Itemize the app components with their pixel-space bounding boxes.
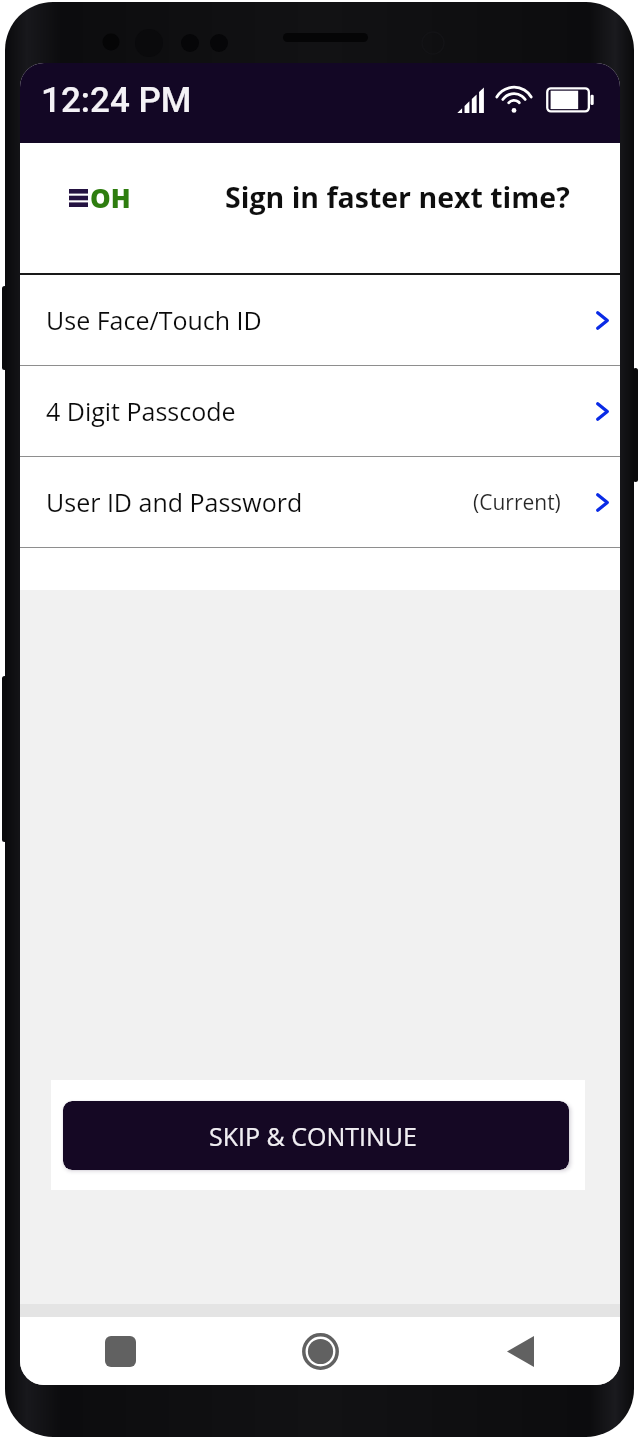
button[interactable]: Recent apps bbox=[20, 1317, 220, 1385]
button[interactable]: 4 Digit Passcode bbox=[20, 366, 620, 456]
staticText: 4 Digit Passcode bbox=[46, 394, 236, 428]
button[interactable]: User ID and Password bbox=[20, 457, 620, 547]
staticText: OH bbox=[90, 180, 131, 215]
staticText: SKIP & CONTINUE bbox=[209, 1119, 417, 1153]
button[interactable]: SKIP & CONTINUE bbox=[63, 1101, 569, 1170]
button[interactable]: Use Face/Touch ID bbox=[20, 275, 620, 365]
staticText: User ID and Password bbox=[46, 485, 303, 519]
button[interactable]: Back bbox=[420, 1317, 620, 1385]
staticText: (Current) bbox=[473, 488, 561, 517]
staticText: 12:24 PM bbox=[41, 80, 192, 121]
staticText: Use Face/Touch ID bbox=[46, 303, 262, 337]
staticText: Sign in faster next time? bbox=[225, 178, 570, 217]
button[interactable]: Home bbox=[220, 1317, 420, 1385]
